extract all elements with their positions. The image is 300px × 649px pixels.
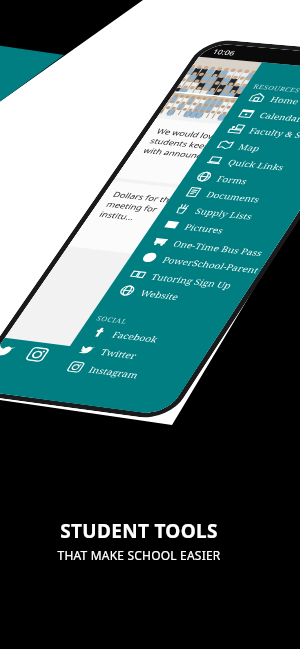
button[interactable]: Dollars for this meeting for institu... [68,181,300,268]
staticText: Pictures [182,221,227,235]
staticText: SOCIAL [94,314,130,327]
staticText: Home [268,94,300,106]
button[interactable]: Calendar [224,103,300,131]
button[interactable]: Quick Links [192,150,300,179]
staticText: Faculty & Staff [247,125,300,141]
button[interactable]: We would love all students keeping up wi… [115,118,300,198]
staticText: Supply Lists [193,205,256,221]
button[interactable]: Tutoring Sign Up [115,264,255,295]
button[interactable]: Instagram [24,346,51,362]
staticText: Calendar [257,110,300,123]
button[interactable]: One-Time Bus Pass [137,231,277,262]
staticText: Forms [215,173,250,186]
staticText: STUDENT TOOLS [0,518,289,544]
staticText: RESOURCES [251,83,300,95]
button[interactable]: Home [235,88,300,115]
staticText: General [230,252,260,262]
staticText: Website [138,287,183,302]
button[interactable]: Website [104,280,244,312]
staticText: Facebook [110,328,162,345]
button[interactable]: Documents [170,182,300,211]
staticText: Instagram [86,363,142,380]
button[interactable]: Supply Lists [159,198,298,228]
staticText: Map [236,141,264,153]
button[interactable]: Twitter [0,342,19,358]
button[interactable]: Twitter [64,338,205,372]
staticText: Twitter [98,346,140,361]
staticText: 10:06 [211,47,238,57]
button[interactable]: PowerSchool-Parent [126,247,266,278]
staticText: One-Time Bus Pass [171,238,266,258]
button[interactable]: Forms [181,166,300,196]
staticText: Documents [204,189,264,204]
button[interactable]: Pictures [148,214,288,244]
button[interactable]: Instagram [52,356,194,390]
staticText: THAT MAKE SCHOOL EASIER [0,547,289,563]
staticText: Quick Links [226,157,287,172]
button[interactable]: Faculty & Staff [214,119,300,147]
button[interactable]: Facebook [76,321,217,354]
staticText: We would love all students keeping up wi… [141,126,247,164]
staticText: PowerSchool-Parent [160,254,262,275]
staticText: Dollars for this meeting for institu... [97,189,180,226]
button[interactable]: Map [203,135,300,163]
staticText: Tutoring Sign Up [149,271,235,290]
